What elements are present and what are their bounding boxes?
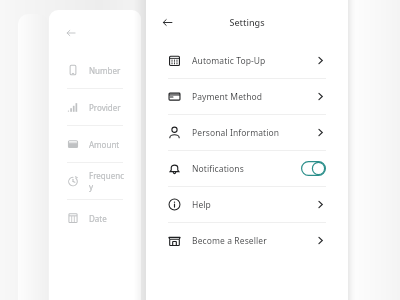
button[interactable]: Help [146,187,348,222]
button[interactable]: Provider [49,89,141,125]
button[interactable]: Notifications toggle [301,161,326,176]
staticText: Date [89,213,107,224]
button[interactable]: Become a Reseller [146,223,348,258]
staticText: Payment Method [192,91,263,103]
staticText: Amount [89,139,120,150]
staticText: Settings [229,16,265,28]
staticText: Become a Reseller [192,235,267,247]
staticText: Provider [89,102,121,113]
button[interactable]: Personal Information [146,115,348,150]
button[interactable]: Frequency [49,163,141,199]
button[interactable]: Number [49,52,141,88]
button[interactable]: Back [65,27,77,39]
button[interactable]: Notifications [146,151,348,186]
button[interactable]: Date [49,200,141,236]
staticText: Automatic Top-Up [192,55,266,67]
button[interactable]: Automatic Top-Up [146,43,348,78]
button[interactable]: Amount [49,126,141,162]
button[interactable]: Payment Method [146,79,348,114]
staticText: Notifications [192,163,244,175]
button[interactable]: Back [161,16,174,29]
staticText: Help [192,199,211,211]
staticText: Personal Information [192,127,280,139]
staticText: Number [89,65,121,76]
staticText: Frequency [89,170,127,192]
